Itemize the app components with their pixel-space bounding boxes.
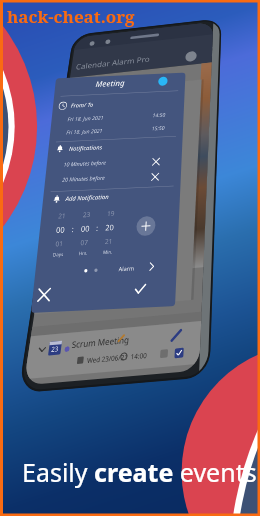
button[interactable] (0, 0, 260, 516)
